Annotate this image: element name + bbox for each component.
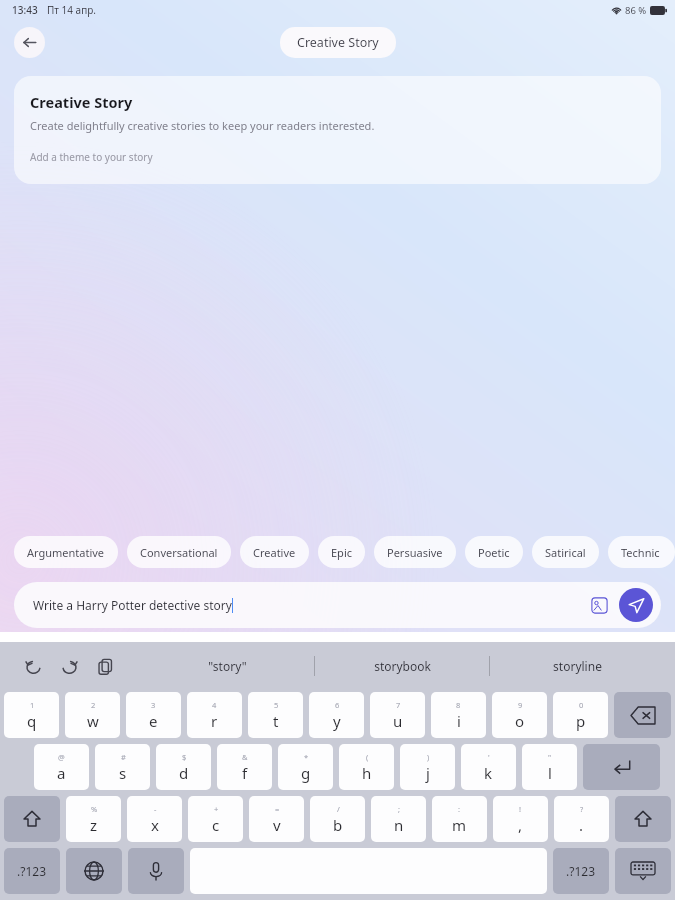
staticText: 4 xyxy=(212,700,217,710)
staticText: Conversational xyxy=(140,545,218,560)
button[interactable]: Redo xyxy=(54,651,84,681)
button[interactable]: Argumentative xyxy=(14,536,118,568)
button[interactable]: 0 xyxy=(553,692,608,738)
button[interactable]: storyline xyxy=(490,642,665,690)
button[interactable]: "story" xyxy=(140,642,315,690)
staticText: 7 xyxy=(396,700,401,710)
button[interactable]: : xyxy=(432,796,487,842)
button[interactable]: Write a Harry Potter detective story xyxy=(14,582,661,628)
staticText: = xyxy=(275,804,280,814)
button[interactable]: 7 xyxy=(370,692,425,738)
staticText: 13:43 xyxy=(12,3,38,17)
staticText: f xyxy=(242,763,248,783)
button[interactable]: ' xyxy=(461,744,516,790)
button[interactable] xyxy=(4,796,60,842)
staticText: t xyxy=(273,711,279,731)
button[interactable]: Image prompt xyxy=(588,594,611,617)
staticText: ( xyxy=(366,752,369,762)
button[interactable]: 5 xyxy=(248,692,303,738)
button[interactable] xyxy=(615,796,671,842)
staticText: ' xyxy=(488,752,490,762)
staticText: d xyxy=(179,763,189,783)
button[interactable]: Creative Story xyxy=(14,76,661,184)
button[interactable]: @ xyxy=(34,744,89,790)
staticText: Technical xyxy=(621,545,662,560)
button[interactable]: Back xyxy=(14,27,45,58)
button[interactable]: & xyxy=(217,744,272,790)
button[interactable] xyxy=(66,848,122,894)
staticText: i xyxy=(457,711,461,731)
staticText: & xyxy=(242,752,248,762)
staticText: - xyxy=(154,804,157,814)
button[interactable]: .?123 xyxy=(4,848,60,894)
staticText: 0 xyxy=(579,700,584,710)
button[interactable]: 4 xyxy=(187,692,242,738)
staticText: $ xyxy=(182,752,187,762)
staticText: z xyxy=(90,815,98,835)
staticText: storybook xyxy=(374,658,431,674)
button[interactable]: ) xyxy=(400,744,455,790)
staticText: v xyxy=(273,815,281,835)
staticText: u xyxy=(393,711,403,731)
staticText: / xyxy=(337,804,340,814)
button[interactable]: Technical xyxy=(608,536,675,568)
staticText: Poetic xyxy=(478,545,510,560)
button[interactable]: Undo xyxy=(18,651,48,681)
staticText: 8 xyxy=(456,700,461,710)
staticText: + xyxy=(214,804,219,814)
staticText: j xyxy=(426,763,430,783)
button[interactable]: + xyxy=(188,796,243,842)
button[interactable]: ( xyxy=(339,744,394,790)
button[interactable]: Creative xyxy=(240,536,309,568)
button[interactable]: 8 xyxy=(431,692,486,738)
button[interactable]: Persuasive xyxy=(374,536,456,568)
button[interactable]: Creative Story xyxy=(280,27,396,58)
button[interactable]: 1 xyxy=(4,692,59,738)
staticText: ; xyxy=(398,804,401,814)
staticText: @ xyxy=(58,752,65,762)
button[interactable]: Epic xyxy=(318,536,365,568)
button[interactable]: ; xyxy=(371,796,426,842)
staticText: # xyxy=(121,752,126,762)
staticText: * xyxy=(304,752,309,762)
button[interactable]: storybook xyxy=(315,642,490,690)
button[interactable] xyxy=(615,848,671,894)
staticText: Creative Story xyxy=(30,92,133,112)
button[interactable]: - xyxy=(127,796,182,842)
staticText: Пт 14 апр. xyxy=(47,3,96,17)
button[interactable]: Satirical xyxy=(532,536,599,568)
staticText: h xyxy=(362,763,372,783)
button[interactable]: # xyxy=(95,744,150,790)
button[interactable]: 6 xyxy=(309,692,364,738)
button[interactable]: = xyxy=(249,796,304,842)
button[interactable]: " xyxy=(522,744,577,790)
staticText: Creative xyxy=(253,545,296,560)
button[interactable]: Send xyxy=(619,588,653,622)
button[interactable]: * xyxy=(278,744,333,790)
staticText: q xyxy=(27,711,37,731)
button[interactable]: / xyxy=(310,796,365,842)
button[interactable] xyxy=(583,744,660,790)
button[interactable]: Poetic xyxy=(465,536,523,568)
button[interactable]: 2 xyxy=(65,692,120,738)
button[interactable]: Clipboard xyxy=(90,651,120,681)
button[interactable]: ? xyxy=(554,796,609,842)
button[interactable] xyxy=(614,692,671,738)
button[interactable]: $ xyxy=(156,744,211,790)
button[interactable]: Conversational xyxy=(127,536,231,568)
button[interactable] xyxy=(128,848,184,894)
button[interactable]: 3 xyxy=(126,692,181,738)
staticText: Persuasive xyxy=(387,545,443,560)
button[interactable]: 9 xyxy=(492,692,547,738)
staticText: : xyxy=(458,804,461,814)
staticText: l xyxy=(548,763,552,783)
staticText: c xyxy=(212,815,220,835)
staticText: y xyxy=(333,711,341,731)
staticText: 3 xyxy=(151,700,156,710)
button[interactable]: ! xyxy=(493,796,548,842)
button[interactable]: % xyxy=(66,796,121,842)
staticText: Write a Harry Potter detective story xyxy=(33,597,232,613)
button[interactable]: .?123 xyxy=(553,848,609,894)
staticText: ? xyxy=(580,804,584,814)
